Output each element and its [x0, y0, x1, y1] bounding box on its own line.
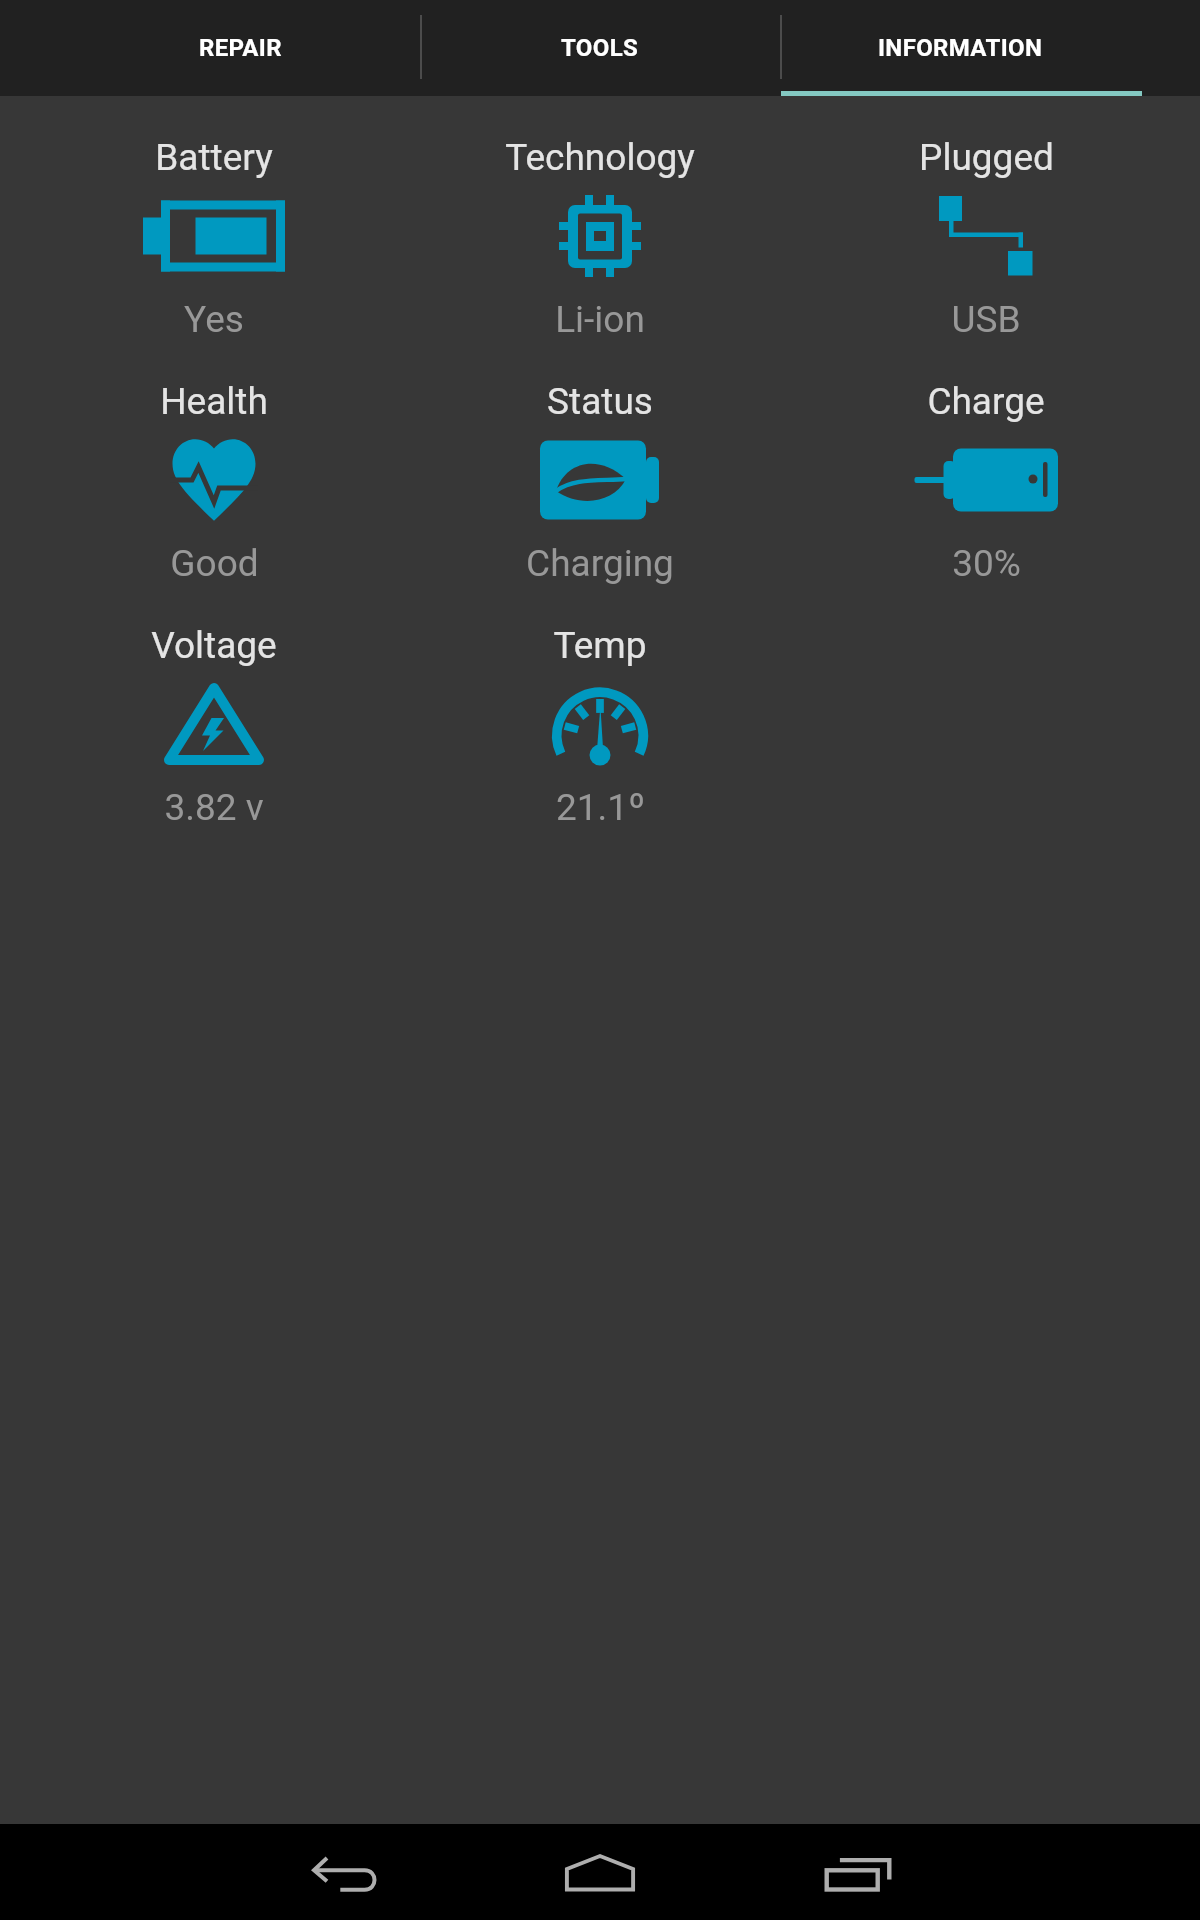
- button[interactable]: Temp: [407, 624, 793, 868]
- button[interactable]: Status: [407, 380, 793, 624]
- button[interactable]: Health: [21, 380, 407, 624]
- staticText: Health: [160, 380, 268, 423]
- staticText: Charging: [526, 542, 674, 585]
- staticText: Yes: [184, 298, 244, 341]
- button[interactable]: Back: [304, 1832, 384, 1912]
- staticText: Battery: [155, 136, 273, 179]
- staticText: Status: [547, 380, 653, 423]
- button[interactable]: INFORMATION: [780, 0, 1140, 96]
- staticText: 3.82 v: [164, 786, 264, 829]
- staticText: 21.1º: [556, 786, 645, 829]
- staticText: INFORMATION: [878, 34, 1043, 62]
- staticText: REPAIR: [199, 34, 282, 62]
- button[interactable]: Battery: [21, 136, 407, 380]
- button[interactable]: Charge: [793, 380, 1179, 624]
- staticText: 30%: [952, 542, 1021, 585]
- button[interactable]: REPAIR: [60, 0, 420, 96]
- staticText: Technology: [505, 136, 695, 179]
- staticText: Temp: [553, 624, 647, 667]
- staticText: Charge: [927, 380, 1045, 423]
- staticText: Good: [170, 542, 259, 585]
- button[interactable]: TOOLS: [420, 0, 780, 96]
- staticText: Li-ion: [555, 298, 645, 341]
- button[interactable]: Home: [560, 1832, 640, 1912]
- button[interactable]: Voltage: [21, 624, 407, 868]
- staticText: USB: [951, 298, 1021, 341]
- button[interactable]: Recent apps: [819, 1832, 899, 1912]
- staticText: Plugged: [919, 136, 1054, 179]
- button[interactable]: Plugged: [793, 136, 1179, 380]
- staticText: TOOLS: [561, 34, 639, 62]
- button[interactable]: Technology: [407, 136, 793, 380]
- staticText: Voltage: [151, 624, 277, 667]
